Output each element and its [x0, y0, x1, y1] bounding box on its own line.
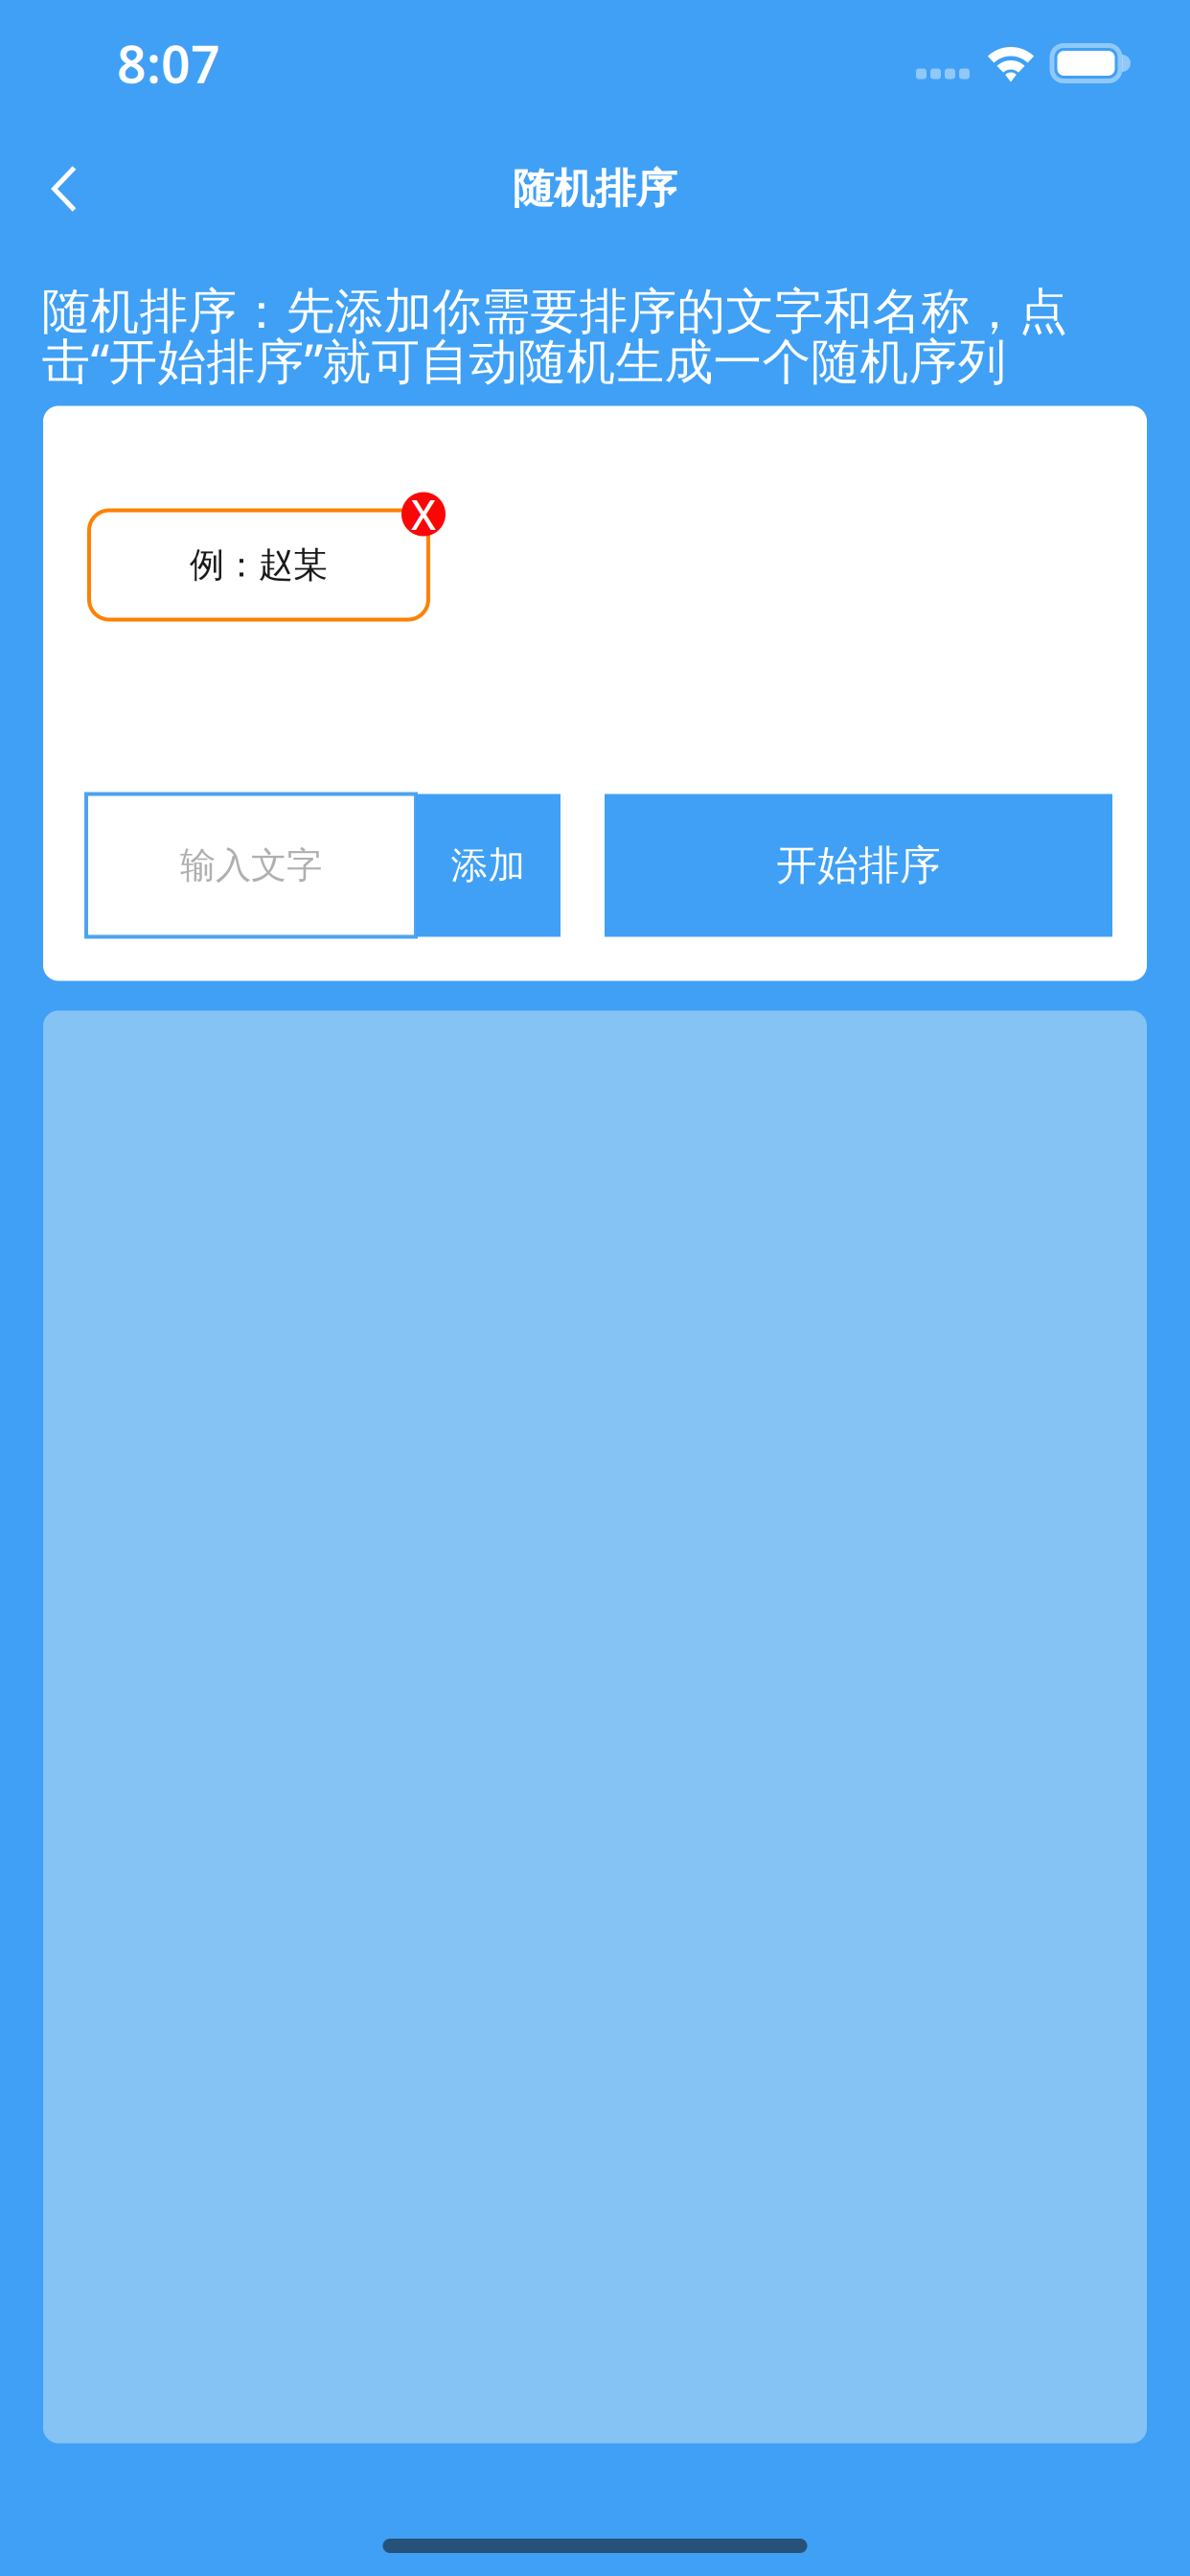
staticText: X	[411, 487, 436, 541]
staticText: 添加	[451, 843, 526, 888]
staticText: 输入文字	[180, 843, 322, 887]
staticText: 例：赵某	[190, 544, 328, 586]
staticText: 开始排序	[776, 840, 941, 890]
button[interactable]: 开始排序	[605, 794, 1112, 937]
staticText: 随机排序	[513, 164, 677, 214]
staticText: 8:07	[117, 29, 220, 97]
staticText: 随机排序：先添加你需要排序的文字和名称，点击“开始排序”就可自动随机生成一个随机…	[42, 282, 1068, 392]
button[interactable]: Remove 例：赵某	[401, 492, 446, 536]
button[interactable]: 添加	[416, 794, 561, 937]
button[interactable]: Back	[13, 138, 115, 240]
